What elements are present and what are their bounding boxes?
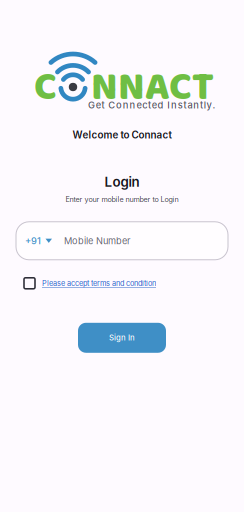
staticText: C <box>34 56 56 119</box>
staticText: Please accept terms and condition <box>42 279 156 288</box>
staticText: NNACT <box>91 56 214 119</box>
staticText: Welcome to Connact <box>72 129 171 141</box>
staticText: +91 <box>25 235 41 246</box>
button[interactable]: Sign In <box>78 323 166 353</box>
button[interactable]: Accept terms and conditions <box>24 278 35 289</box>
button[interactable]: Please accept terms and condition <box>35 279 156 288</box>
staticText: Mobile Number <box>64 235 130 246</box>
staticText: Sign In <box>109 333 135 342</box>
staticText: Enter your mobile number to Login <box>65 195 178 204</box>
staticText: Get Connected Instantly. <box>88 99 215 111</box>
staticText: Login <box>104 174 139 190</box>
